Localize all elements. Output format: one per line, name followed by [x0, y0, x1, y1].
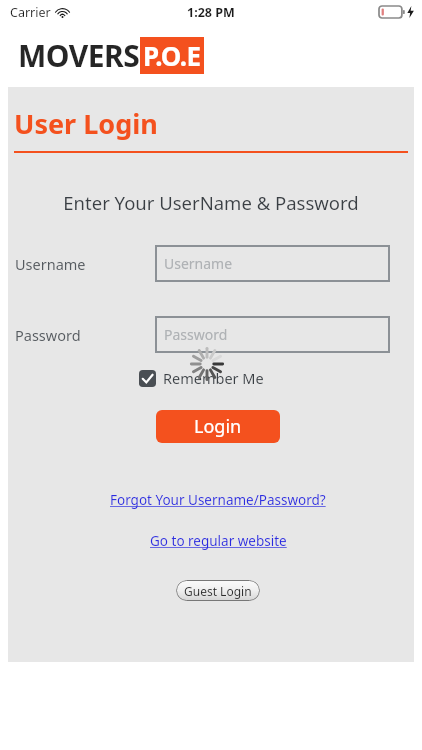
button[interactable]: Login	[156, 410, 280, 443]
staticText: Username	[15, 254, 86, 274]
staticText: User Login	[14, 105, 158, 142]
staticText: 1:28 PM	[187, 4, 235, 21]
button[interactable]: Go to regular website	[148, 530, 289, 552]
staticText: P.O.E	[143, 38, 201, 73]
button[interactable]: Username	[155, 245, 390, 282]
staticText: Username	[164, 254, 233, 273]
staticText: MOVERS	[18, 35, 140, 76]
staticText: Remember Me	[163, 368, 264, 388]
staticText: Password	[164, 325, 228, 344]
button[interactable]: Guest Login	[176, 580, 260, 601]
staticText: Go to regular website	[150, 532, 287, 550]
staticText: Login	[194, 414, 242, 439]
button[interactable]: Forgot Your Username/Password?	[108, 489, 328, 511]
staticText: Password	[15, 325, 81, 345]
staticText: Enter Your UserName & Password	[8, 190, 414, 215]
staticText: Carrier	[10, 4, 51, 21]
staticText: Guest Login	[184, 583, 252, 599]
button[interactable]: Password	[155, 316, 390, 353]
button[interactable]: Remember Me checkbox	[137, 366, 266, 390]
staticText: Forgot Your Username/Password?	[110, 491, 326, 509]
other: Remember Me checkbox	[139, 370, 156, 387]
